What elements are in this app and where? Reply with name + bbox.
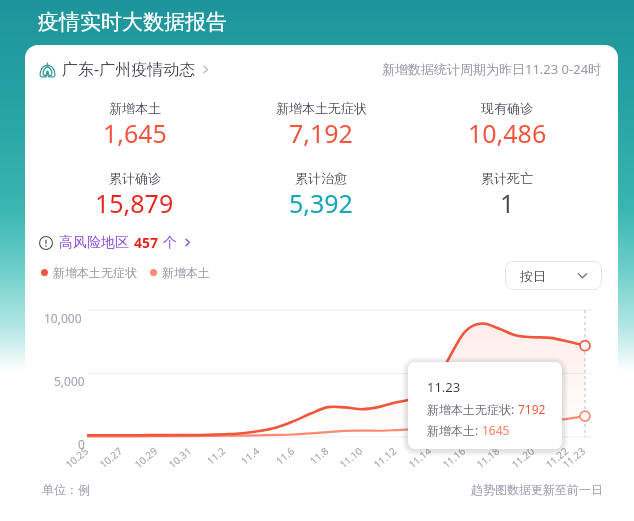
staticText: 1,645 bbox=[103, 116, 167, 150]
button[interactable]: 高风险地区 bbox=[39, 233, 193, 252]
staticText: 7,192 bbox=[289, 116, 353, 150]
staticText: 新增本土 bbox=[109, 100, 161, 116]
staticText: 1645 bbox=[482, 422, 510, 438]
staticText: 11.8 bbox=[290, 444, 331, 482]
staticText: 11.10 bbox=[324, 444, 365, 482]
button[interactable]: 现有确诊 bbox=[414, 100, 600, 150]
staticText: 广东-广州疫情动态 bbox=[62, 58, 196, 80]
staticText: 11.4 bbox=[221, 444, 262, 482]
staticText: 11.18 bbox=[461, 444, 502, 482]
staticText: 10,486 bbox=[468, 116, 547, 150]
staticText: 11.20 bbox=[496, 444, 537, 482]
staticText: 11.2 bbox=[187, 444, 228, 482]
staticText: 0 bbox=[78, 436, 85, 452]
staticText: 5,392 bbox=[289, 186, 353, 220]
staticText: 11.16 bbox=[427, 444, 468, 482]
staticText: 11.6 bbox=[256, 444, 297, 482]
staticText: 10.25 bbox=[50, 444, 91, 482]
staticText: 5,000 bbox=[54, 373, 85, 389]
staticText: 累计确诊 bbox=[109, 170, 161, 186]
staticText: 累计治愈 bbox=[295, 170, 347, 186]
button[interactable]: 按日 bbox=[505, 261, 602, 290]
staticText: 11.23 bbox=[427, 378, 461, 396]
staticText: 趋势图数据更新至前一日 bbox=[471, 482, 603, 497]
staticText: 1 bbox=[500, 186, 515, 220]
staticText: 现有确诊 bbox=[481, 100, 533, 116]
staticText: 10.31 bbox=[153, 444, 194, 482]
staticText: 10.29 bbox=[119, 444, 160, 482]
staticText: 新增本土 bbox=[162, 265, 210, 280]
staticText: 疫情实时大数据报告 bbox=[38, 9, 227, 35]
staticText: 按日 bbox=[520, 268, 546, 284]
staticText: 单位：例 bbox=[42, 482, 90, 497]
staticText: 高风险地区 bbox=[59, 234, 129, 252]
staticText: 个 bbox=[163, 234, 177, 252]
staticText: 新增数据统计周期为昨日11.23 0-24时 bbox=[382, 60, 602, 78]
staticText: 11.14 bbox=[393, 444, 434, 482]
staticText: 累计死亡 bbox=[481, 170, 533, 186]
staticText: 新增本土: bbox=[427, 422, 482, 438]
staticText: 11.23 bbox=[547, 444, 588, 482]
button[interactable]: 累计死亡 bbox=[414, 170, 600, 220]
staticText: 10.27 bbox=[84, 444, 125, 482]
button[interactable]: 累计治愈 bbox=[228, 170, 414, 220]
button[interactable]: 新增本土无症状 bbox=[228, 100, 414, 150]
button[interactable]: 新增本土 bbox=[41, 100, 228, 150]
staticText: 15,879 bbox=[95, 186, 174, 220]
staticText: 457 bbox=[134, 233, 159, 252]
staticText: 11.22 bbox=[530, 444, 571, 482]
staticText: 11.12 bbox=[358, 444, 399, 482]
button[interactable]: 广东-广州疫情动态 bbox=[39, 58, 211, 80]
staticText: 新增本土无症状 bbox=[276, 100, 367, 116]
staticText: 10,000 bbox=[44, 310, 82, 326]
staticText: 新增本土无症状: bbox=[427, 401, 518, 417]
staticText: 新增本土无症状 bbox=[53, 265, 137, 280]
staticText: 7192 bbox=[518, 401, 546, 417]
button[interactable]: 累计确诊 bbox=[41, 170, 228, 220]
